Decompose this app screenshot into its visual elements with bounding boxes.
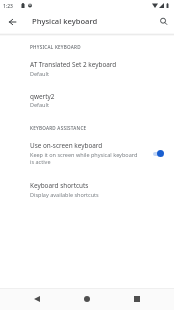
staticText: Keyboard shortcuts [30,181,89,190]
staticText: Physical keyboard [32,16,98,26]
button[interactable]: Use on-screen keyboard, on [147,144,171,164]
button[interactable]: Navigate up [2,12,22,32]
staticText: 1:23 [3,3,13,10]
button[interactable]: Recent apps [125,287,149,310]
staticText: Display available shortcuts [30,191,99,198]
staticText: qwerty2 [30,92,55,101]
staticText: Default [30,70,49,77]
staticText: Use on-screen keyboard [30,141,103,150]
staticText: PHYSICAL KEYBOARD [30,44,81,50]
staticText: Keep it on screen while physical keyboar… [30,151,140,165]
button[interactable] [0,137,174,172]
staticText: AT Translated Set 2 keyboard [30,60,117,69]
staticText: KEYBOARD ASSISTANCE [30,125,87,131]
button[interactable]: Back [25,287,49,310]
button[interactable] [0,176,174,208]
button[interactable]: Home [75,287,99,310]
button[interactable] [0,88,174,120]
staticText: Default [30,101,49,108]
button[interactable] [0,56,174,88]
button[interactable]: Search [153,11,173,31]
